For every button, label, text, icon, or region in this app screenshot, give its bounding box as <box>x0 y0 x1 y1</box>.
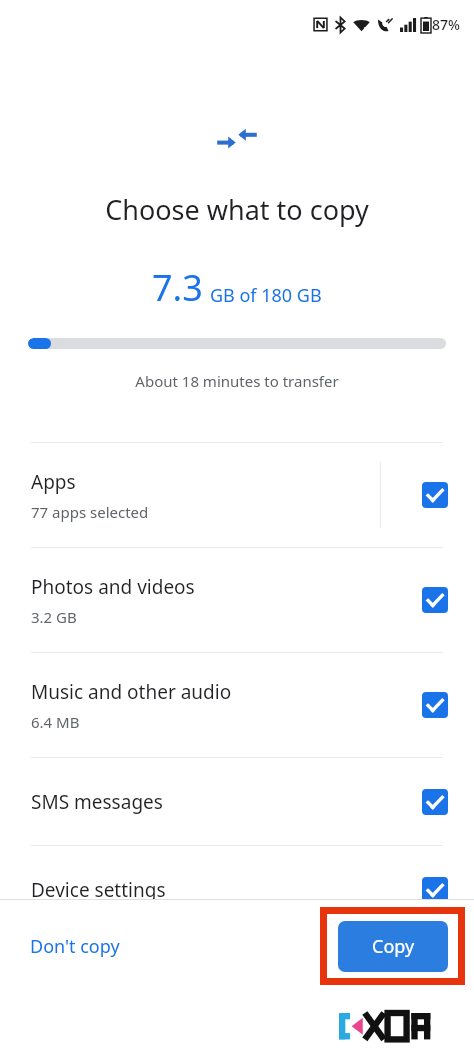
staticText: Copy <box>372 934 415 959</box>
staticText: SMS messages <box>31 789 163 815</box>
button[interactable]: Toggle selection <box>420 690 450 720</box>
staticText: Apps <box>31 469 76 495</box>
staticText: 87% <box>432 15 460 34</box>
staticText: Choose what to copy <box>0 191 474 228</box>
button[interactable]: Don't copy <box>18 924 132 969</box>
button[interactable]: Toggle selection <box>420 787 450 817</box>
button[interactable]: Copy <box>338 921 448 972</box>
button[interactable]: Device settings <box>0 846 474 933</box>
staticText: Photos and videos <box>31 574 195 600</box>
staticText: Music and other audio <box>31 679 232 705</box>
staticText: About 18 minutes to transfer <box>0 371 474 391</box>
button[interactable]: Toggle selection <box>420 480 450 510</box>
button[interactable]: Apps <box>0 443 474 547</box>
button[interactable]: Photos and videos <box>0 548 474 652</box>
staticText: Don't copy <box>30 934 120 959</box>
staticText: 6.4 MB <box>31 712 80 732</box>
staticText: Device settings <box>31 877 166 903</box>
button[interactable]: Toggle selection <box>420 875 450 905</box>
staticText: 77 apps selected <box>31 502 149 522</box>
staticText: 7.3 <box>152 263 203 312</box>
staticText: GB of 180 GB <box>210 283 322 308</box>
button[interactable]: SMS messages <box>0 758 474 845</box>
button[interactable]: Music and other audio <box>0 653 474 757</box>
staticText: 3.2 GB <box>31 607 77 627</box>
button[interactable]: Toggle selection <box>420 585 450 615</box>
